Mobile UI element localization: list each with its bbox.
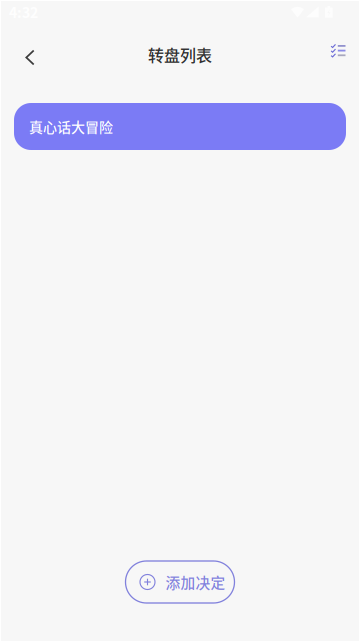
button[interactable]: 添加决定	[125, 561, 234, 603]
staticText: 真心话大冒险	[29, 116, 113, 137]
button[interactable]: Manage list	[316, 28, 360, 72]
staticText: 添加决定	[165, 571, 225, 593]
staticText: 转盘列表	[148, 43, 212, 66]
button[interactable]: Back	[8, 35, 52, 79]
button[interactable]: 真心话大冒险	[14, 103, 346, 150]
